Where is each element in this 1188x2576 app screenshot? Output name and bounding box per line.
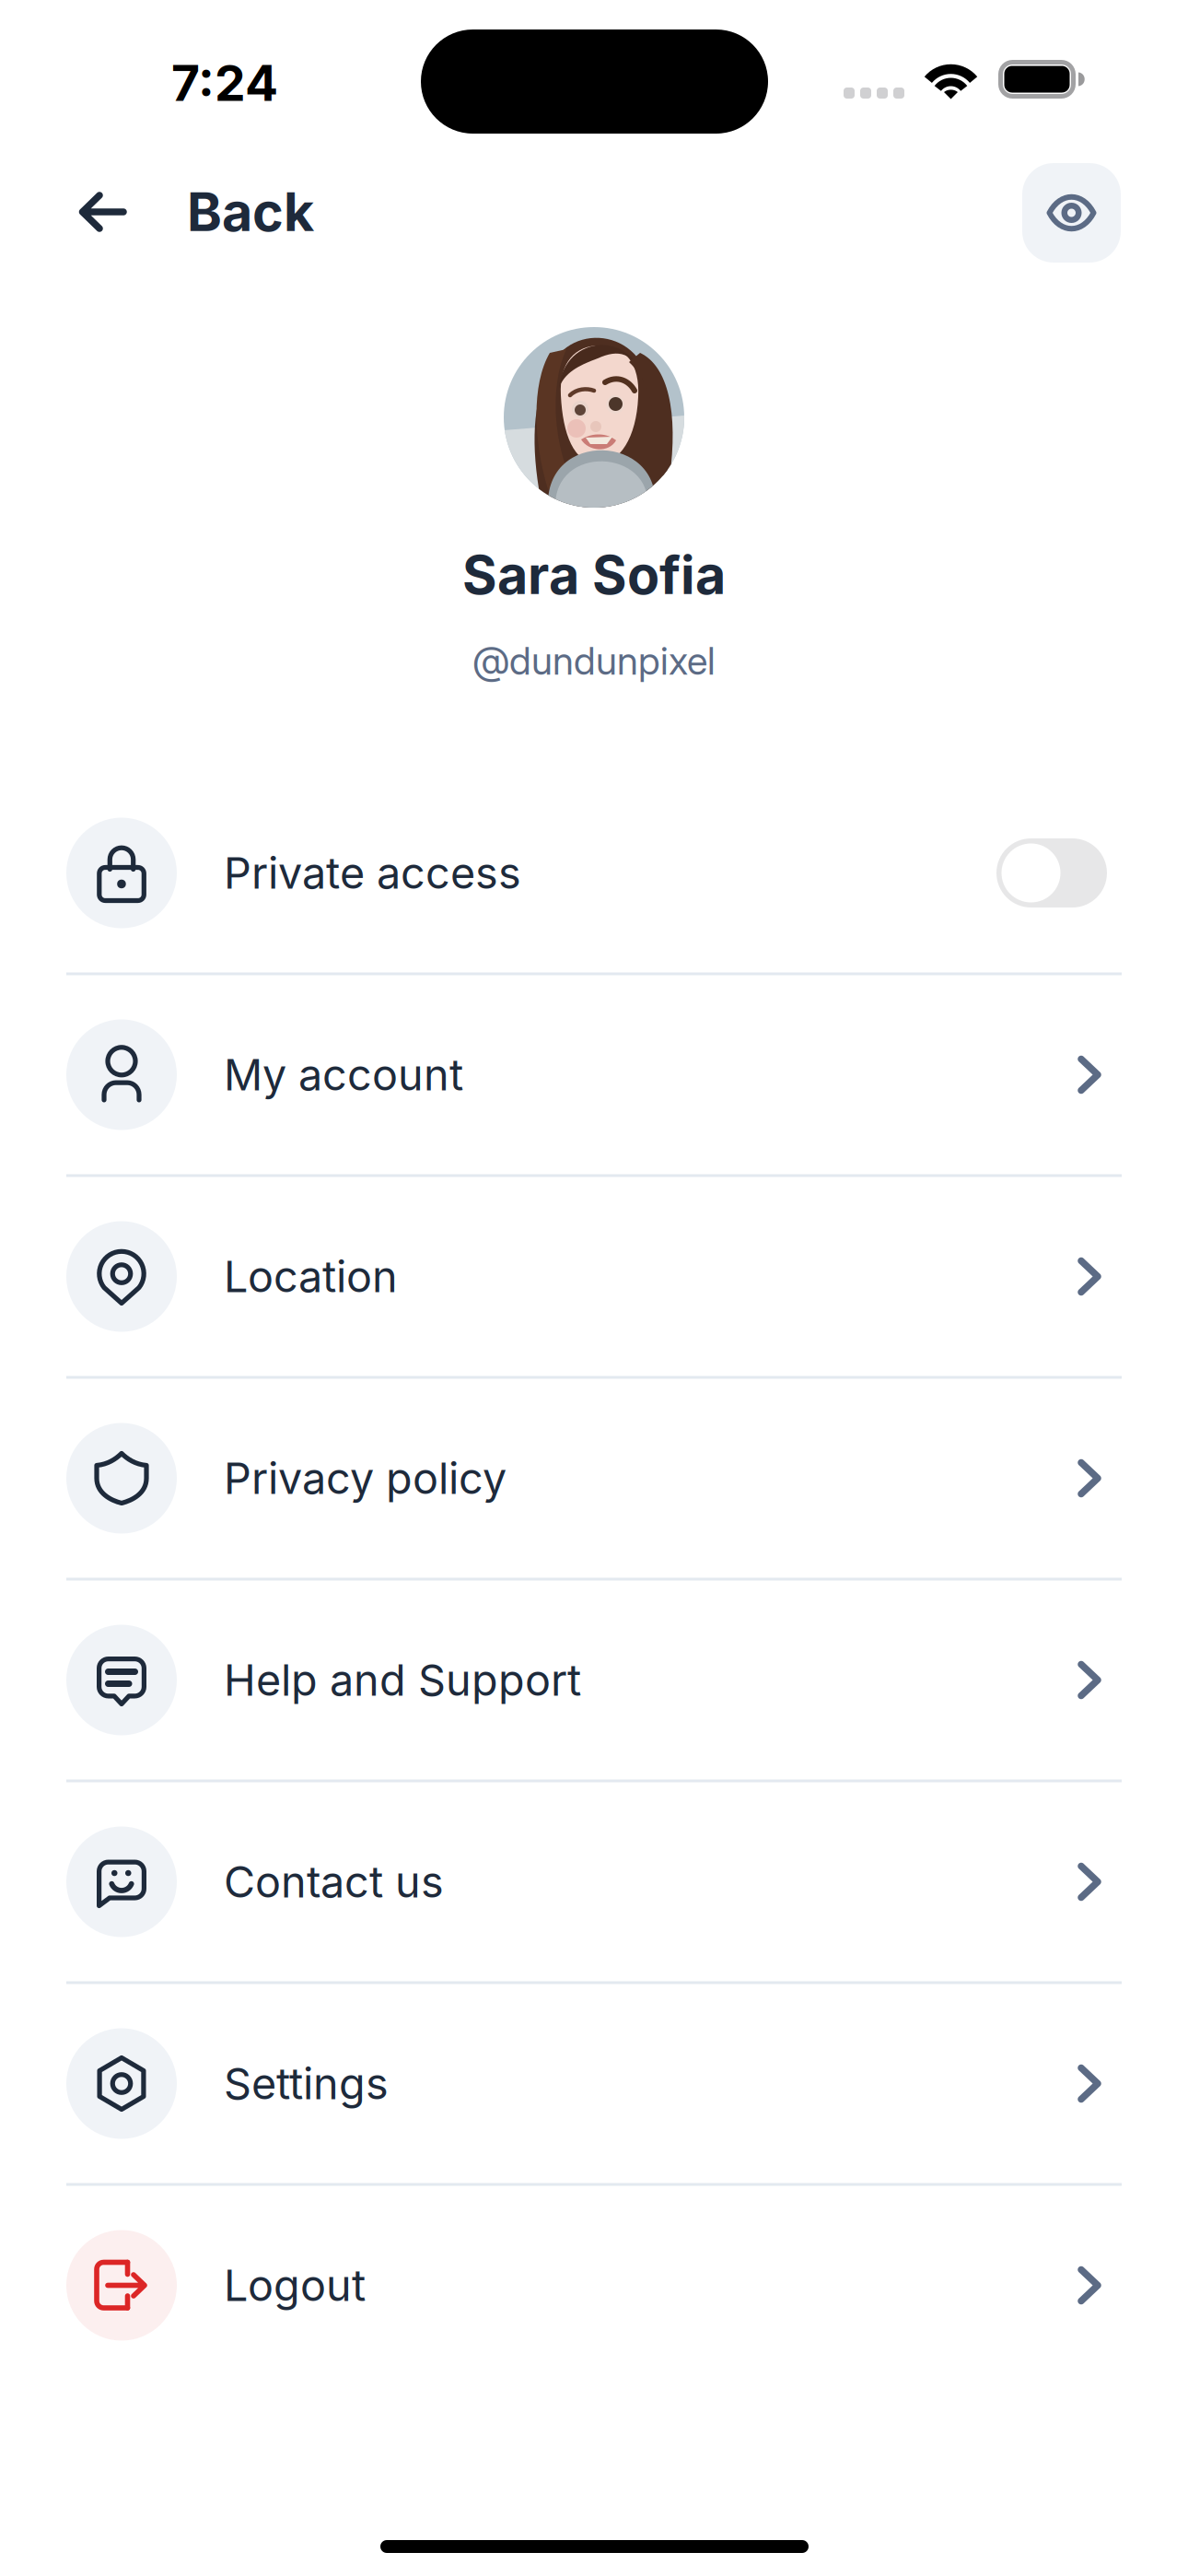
staticText: Sara Sofia xyxy=(462,543,726,607)
staticText: Contact us xyxy=(224,1856,444,1908)
button[interactable]: Back xyxy=(78,157,345,267)
button[interactable]: Privacy policy xyxy=(0,1377,1188,1579)
staticText: Location xyxy=(224,1251,398,1303)
button[interactable]: My account xyxy=(0,974,1188,1176)
staticText: Privacy policy xyxy=(224,1452,507,1504)
staticText: Help and Support xyxy=(224,1654,581,1706)
button[interactable]: Settings xyxy=(0,1983,1188,2184)
button[interactable]: Private access xyxy=(0,772,1188,974)
staticText: Logout xyxy=(224,2259,366,2311)
button[interactable]: Help and Support xyxy=(0,1579,1188,1781)
button[interactable]: Preview profile xyxy=(1022,163,1121,263)
button[interactable]: Logout xyxy=(0,2184,1188,2386)
staticText: Private access xyxy=(224,847,521,899)
button[interactable]: Contact us xyxy=(0,1781,1188,1983)
staticText: Settings xyxy=(224,2058,389,2110)
button[interactable]: Location xyxy=(0,1176,1188,1377)
staticText: Back xyxy=(187,180,314,244)
staticText: @dundunpixel xyxy=(472,637,716,684)
staticText: My account xyxy=(224,1049,463,1101)
staticText: 7:24 xyxy=(171,53,278,113)
